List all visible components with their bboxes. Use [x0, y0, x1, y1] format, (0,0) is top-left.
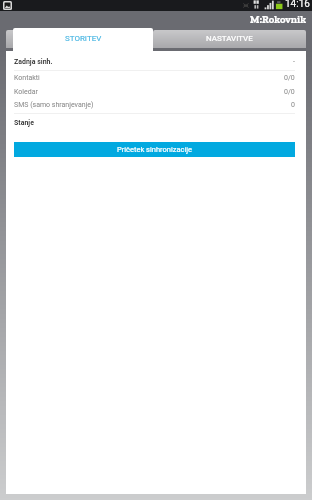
staticText: 0/0: [284, 88, 295, 96]
staticText: NASTAVITVE: [206, 34, 253, 43]
button[interactable]: NASTAVITVE: [153, 30, 306, 48]
button[interactable]: Pričetek sinhronizacije: [14, 142, 295, 157]
button[interactable]: Kontakti: [14, 71, 295, 84]
staticText: Pričetek sinhronizacije: [117, 145, 193, 154]
button[interactable]: Koledar: [14, 85, 295, 98]
staticText: Stanje: [14, 119, 34, 127]
staticText: Kontakti: [14, 74, 40, 82]
button[interactable]: SMS (samo shranjevanje): [14, 98, 295, 111]
staticText: Koledar: [14, 88, 38, 96]
staticText: M:Rokovnik: [250, 13, 306, 26]
staticText: 14:16: [285, 0, 310, 9]
button[interactable]: STORITEV: [13, 28, 153, 53]
staticText: -: [293, 58, 295, 66]
staticText: 0/0: [284, 74, 295, 82]
other: Screenshot captured: [3, 1, 12, 10]
staticText: 0: [291, 101, 295, 109]
other: Status icons: [242, 0, 284, 11]
staticText: SMS (samo shranjevanje): [14, 101, 94, 109]
staticText: STORITEV: [65, 34, 102, 43]
staticText: Zadnja sinh.: [14, 58, 53, 66]
